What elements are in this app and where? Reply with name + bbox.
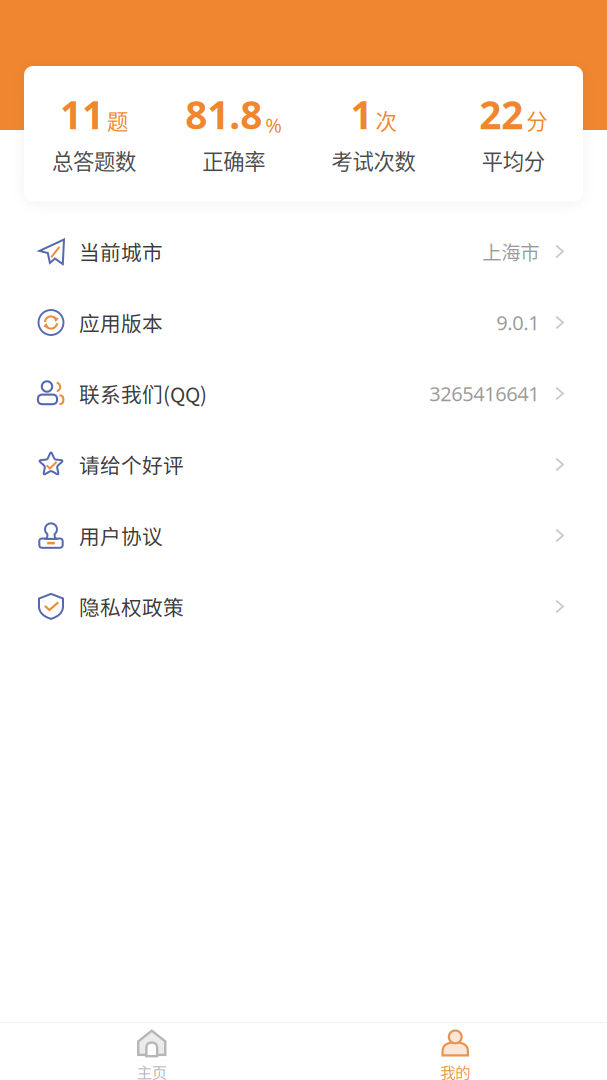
- staticText: 联系我们(QQ): [79, 378, 207, 408]
- staticText: 考试次数: [331, 145, 415, 176]
- button[interactable]: 主页 Home tab: [0, 1023, 303, 1080]
- staticText: 81.8: [185, 88, 262, 141]
- button[interactable]: 应用版本: [0, 287, 607, 358]
- staticText: 我的: [440, 1060, 470, 1080]
- staticText: 总答题数: [52, 145, 136, 176]
- staticText: 应用版本: [79, 307, 163, 337]
- staticText: 上海市: [482, 237, 539, 265]
- staticText: 当前城市: [79, 236, 163, 266]
- staticText: 次: [375, 105, 396, 136]
- staticText: 9.0.1: [496, 309, 539, 336]
- staticText: 22: [479, 88, 523, 141]
- button[interactable]: 我的 Profile tab: [303, 1023, 607, 1080]
- staticText: 平均分: [482, 145, 545, 176]
- button[interactable]: 当前城市: [0, 216, 607, 287]
- staticText: 请给个好评: [79, 449, 184, 479]
- staticText: 隐私权政策: [79, 591, 184, 621]
- staticText: 主页: [137, 1060, 167, 1080]
- button[interactable]: 隐私权政策: [0, 571, 607, 642]
- staticText: 1: [350, 88, 372, 141]
- button[interactable]: 用户协议: [0, 500, 607, 571]
- staticText: %: [265, 111, 282, 139]
- button[interactable]: 联系我们(QQ): [0, 358, 607, 429]
- staticText: 11: [60, 88, 104, 141]
- button[interactable]: 请给个好评: [0, 429, 607, 500]
- staticText: 题: [107, 105, 128, 136]
- staticText: 用户协议: [79, 520, 163, 550]
- staticText: 正确率: [202, 145, 265, 176]
- staticText: 分: [526, 105, 547, 136]
- staticText: 3265416641: [429, 380, 539, 407]
